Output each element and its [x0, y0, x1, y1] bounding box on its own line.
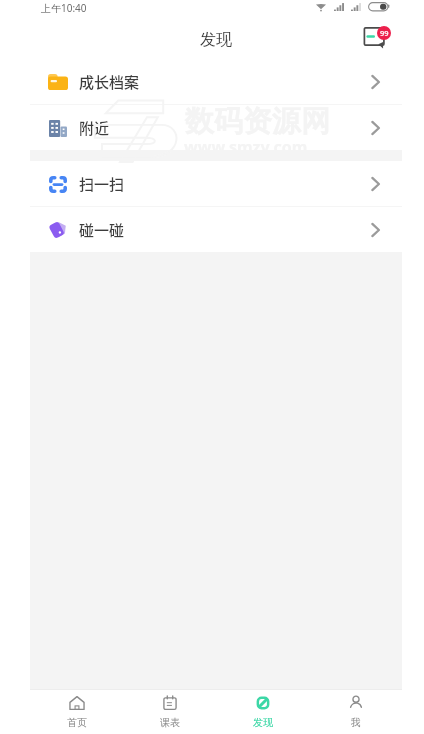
staticText: 成长档案	[79, 71, 140, 93]
button[interactable]: 成长档案	[30, 59, 402, 104]
button[interactable]: 扫一扫	[30, 161, 402, 206]
button[interactable]: Messages	[362, 26, 392, 52]
staticText: 碰一碰	[79, 219, 125, 241]
staticText: 首页	[67, 716, 87, 729]
staticText: 99	[380, 28, 389, 38]
button[interactable]: 首页	[30, 689, 123, 734]
staticText: 附近	[79, 117, 110, 139]
staticText: 上午10:40	[41, 1, 87, 15]
staticText: 数码资源网	[185, 103, 330, 140]
button[interactable]: 课表	[123, 689, 216, 734]
staticText: 发现	[253, 716, 273, 729]
button[interactable]: 发现	[216, 689, 309, 734]
button[interactable]: 碰一碰	[30, 207, 402, 252]
staticText: 扫一扫	[79, 173, 125, 195]
staticText: 课表	[160, 716, 180, 729]
staticText: 我	[351, 716, 361, 729]
staticText: 发现	[200, 30, 232, 50]
staticText: www.smzy.com	[184, 136, 308, 158]
button[interactable]: 我	[309, 689, 402, 734]
button[interactable]: 附近	[30, 105, 402, 150]
